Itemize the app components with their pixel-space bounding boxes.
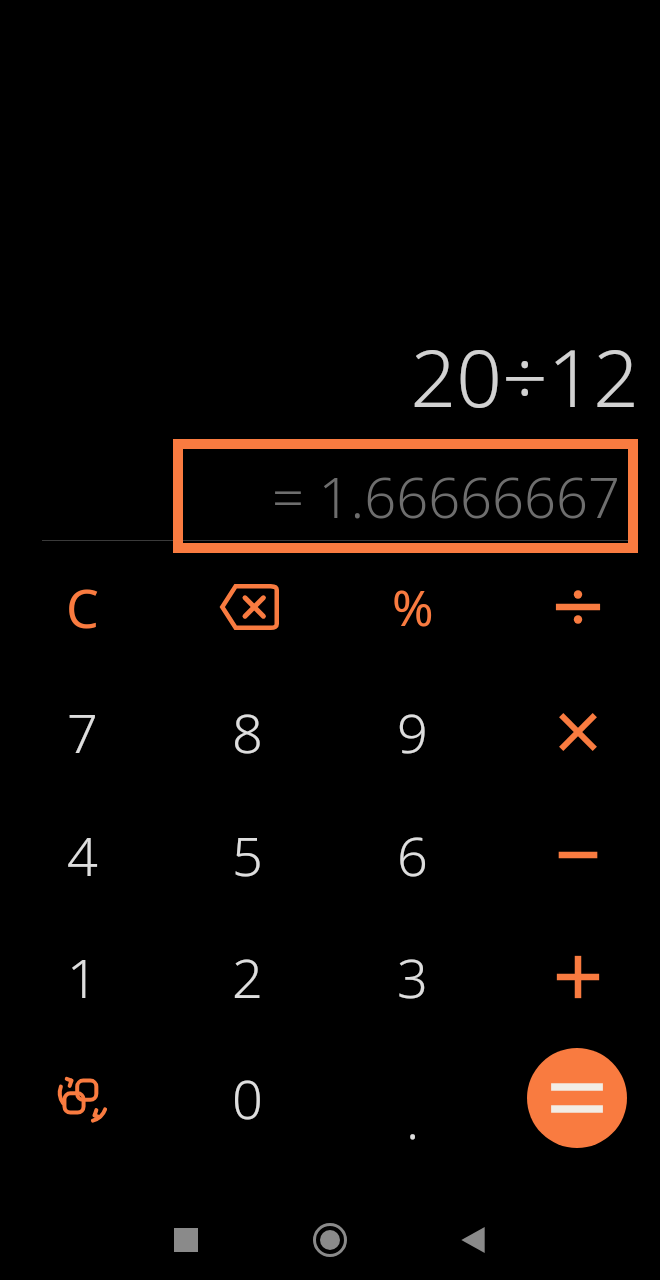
staticText: C	[66, 572, 99, 643]
staticText: 8	[232, 695, 263, 769]
button[interactable]: 2	[165, 916, 330, 1038]
button[interactable]: Home	[290, 1200, 370, 1280]
staticText: 0	[232, 1061, 263, 1135]
button[interactable]: Backspace	[165, 546, 330, 668]
button[interactable]: 5	[165, 794, 330, 916]
staticText: 20÷12	[410, 321, 639, 430]
staticText: = 1.66666667	[272, 458, 620, 534]
staticText: 3	[397, 940, 428, 1014]
button[interactable]: Divide	[495, 546, 660, 668]
button[interactable]: .	[330, 1037, 495, 1159]
button[interactable]: Minus	[495, 794, 660, 916]
staticText: 1	[67, 940, 98, 1014]
button[interactable]: 6	[330, 794, 495, 916]
button[interactable]: Percent	[330, 546, 495, 668]
button[interactable]: Unit converter	[0, 1037, 165, 1159]
button[interactable]: Recents	[146, 1200, 226, 1280]
button[interactable]: 9	[330, 671, 495, 793]
button[interactable]: 8	[165, 671, 330, 793]
staticText: 9	[397, 695, 428, 769]
staticText: 6	[397, 818, 428, 892]
button[interactable]: Plus	[495, 916, 660, 1038]
staticText: %	[392, 573, 434, 641]
staticText: 5	[232, 818, 263, 892]
button[interactable]: Multiply	[495, 671, 660, 793]
staticText: 4	[67, 818, 98, 892]
button[interactable]: 7	[0, 671, 165, 793]
button[interactable]: Back	[433, 1200, 513, 1280]
staticText: .	[406, 1081, 420, 1155]
button[interactable]: Clear	[0, 546, 165, 668]
button[interactable]: Equals	[527, 1048, 627, 1148]
button[interactable]: 0	[165, 1037, 330, 1159]
button[interactable]: = 1.66666667	[173, 439, 638, 553]
button[interactable]: 1	[0, 916, 165, 1038]
button[interactable]: 3	[330, 916, 495, 1038]
staticText: 2	[232, 940, 263, 1014]
staticText: 7	[67, 695, 98, 769]
button[interactable]: 4	[0, 794, 165, 916]
